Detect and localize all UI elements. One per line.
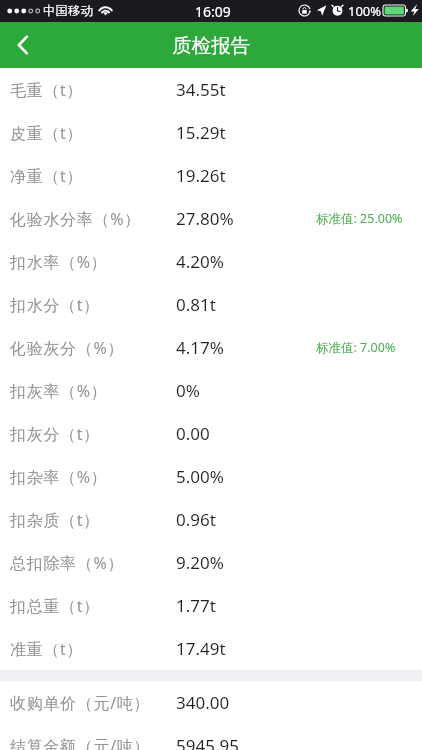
staticText: 5.00% — [176, 465, 224, 488]
staticText: 化验灰分（%） — [10, 337, 125, 359]
staticText: 准重（t） — [10, 638, 84, 660]
button[interactable]: 扣灰分（t） — [0, 412, 422, 455]
button[interactable]: 准重（t） — [0, 627, 422, 670]
button[interactable]: 毛重（t） — [0, 68, 422, 111]
staticText: 0.96t — [176, 508, 216, 531]
staticText: 17.49t — [176, 637, 226, 660]
staticText: 19.26t — [176, 164, 226, 187]
staticText: 标准值: 7.00% — [316, 339, 396, 356]
button[interactable]: 总扣除率（%） — [0, 541, 422, 584]
button[interactable]: 净重（t） — [0, 154, 422, 197]
staticText: 扣水分（t） — [10, 294, 100, 316]
staticText: 标准值: 25.00% — [316, 210, 403, 227]
staticText: 5945.95 — [176, 734, 239, 750]
staticText: 34.55t — [176, 78, 226, 101]
staticText: 皮重（t） — [10, 122, 84, 144]
staticText: 0.81t — [176, 293, 216, 316]
staticText: 化验水分率（%） — [10, 208, 141, 230]
button[interactable]: 皮重（t） — [0, 111, 422, 154]
staticText: 0.00 — [176, 422, 210, 445]
button[interactable]: 扣水分（t） — [0, 283, 422, 326]
staticText: 100% — [348, 2, 382, 20]
staticText: 净重（t） — [10, 165, 84, 187]
button[interactable]: 扣总重（t） — [0, 584, 422, 627]
staticText: 扣水率（%） — [10, 251, 108, 273]
staticText: 总扣除率（%） — [10, 552, 125, 574]
staticText: 16:09 — [195, 2, 231, 21]
staticText: 4.17% — [176, 336, 224, 359]
staticText: 扣灰分（t） — [10, 423, 100, 445]
staticText: 扣灰率（%） — [10, 380, 108, 402]
button[interactable]: 收购单价（元/吨） — [0, 681, 422, 724]
staticText: 毛重（t） — [10, 79, 84, 101]
staticText: 中国移动 — [43, 3, 93, 19]
button[interactable]: Back — [0, 22, 46, 68]
staticText: 结算金额（元/吨） — [10, 735, 151, 750]
staticText: 扣杂率（%） — [10, 466, 108, 488]
button[interactable]: 扣杂率（%） — [0, 455, 422, 498]
staticText: 27.80% — [176, 207, 234, 230]
button[interactable]: 化验灰分（%） — [0, 326, 422, 369]
staticText: 340.00 — [176, 691, 230, 714]
staticText: 15.29t — [176, 121, 226, 144]
staticText: 9.20% — [176, 551, 224, 574]
staticText: 扣杂质（t） — [10, 509, 100, 531]
button[interactable]: 结算金额（元/吨） — [0, 724, 422, 750]
staticText: 4.20% — [176, 250, 224, 273]
staticText: 0% — [176, 379, 200, 402]
button[interactable]: 扣灰率（%） — [0, 369, 422, 412]
button[interactable]: 化验水分率（%） — [0, 197, 422, 240]
staticText: 收购单价（元/吨） — [10, 692, 151, 714]
staticText: 扣总重（t） — [10, 595, 100, 617]
button[interactable]: 扣杂质（t） — [0, 498, 422, 541]
staticText: 1.77t — [176, 594, 216, 617]
button[interactable]: 扣水率（%） — [0, 240, 422, 283]
staticText: 质检报告 — [172, 33, 250, 58]
